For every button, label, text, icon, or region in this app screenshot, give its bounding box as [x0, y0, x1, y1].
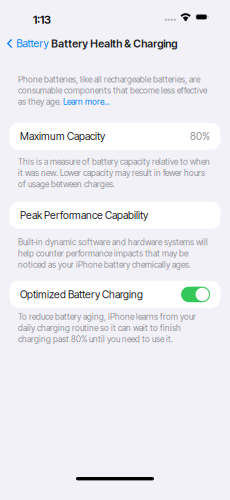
- staticText: Phone batteries, like all rechargeable b…: [18, 74, 207, 107]
- staticText: Maximum Capacity: [20, 130, 105, 143]
- staticText: Built-in dynamic software and hardware s…: [18, 237, 208, 270]
- staticText: Optimized Battery Charging: [20, 288, 143, 301]
- staticText: Peak Performance Capability: [20, 209, 148, 222]
- staticText: 80%: [190, 130, 210, 143]
- button[interactable]: Optimized Battery Charging: [9, 281, 220, 308]
- button[interactable]: Maximum Capacity: [9, 123, 220, 150]
- staticText: This is a measure of battery capacity re…: [18, 156, 210, 189]
- staticText: Battery: [16, 37, 48, 50]
- staticText: To reduce battery aging, iPhone learns f…: [18, 311, 196, 344]
- button[interactable]: Battery: [3, 34, 51, 53]
- staticText: 1:13: [33, 13, 51, 26]
- staticText: Battery Health & Charging: [51, 37, 177, 50]
- button[interactable]: Peak Performance Capability: [9, 202, 220, 229]
